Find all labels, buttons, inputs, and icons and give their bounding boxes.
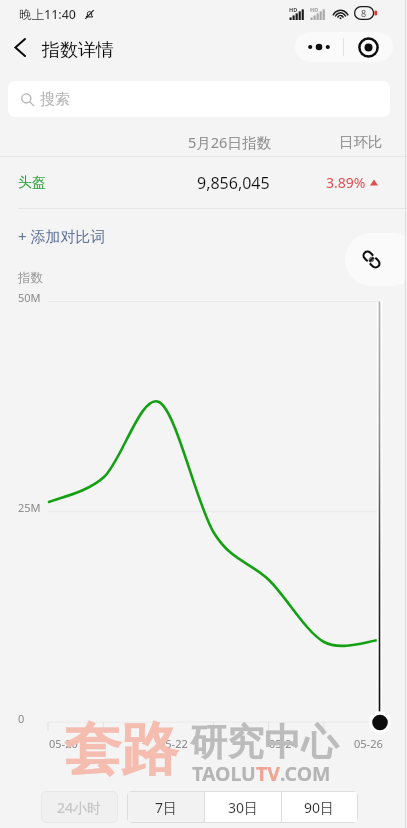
staticText: 研究中心	[190, 719, 338, 766]
staticText: TAOLU	[192, 760, 256, 787]
staticText: 0	[18, 711, 25, 726]
staticText: 套路	[64, 714, 178, 786]
staticText: 3.89%	[326, 173, 366, 192]
staticText: .COM	[280, 760, 331, 787]
button[interactable]: Copy link	[345, 233, 407, 286]
staticText: 晚上11:40	[19, 6, 77, 23]
button[interactable]: 7日	[128, 792, 204, 822]
staticText: 30日	[228, 798, 259, 817]
staticText: 5月26日指数	[188, 132, 271, 152]
staticText: 9,856,045	[197, 172, 270, 194]
staticText: HD	[289, 6, 298, 13]
button[interactable]: 30日	[205, 792, 281, 822]
button[interactable]: 24小时	[42, 792, 117, 822]
staticText: 05-20	[49, 736, 78, 751]
staticText: 05-22	[159, 736, 188, 751]
staticText: 搜索	[40, 90, 70, 109]
staticText: 05-26	[354, 736, 383, 751]
staticText: 25M	[18, 500, 41, 515]
staticText: TV	[256, 760, 280, 787]
staticText: 日环比	[339, 133, 383, 151]
button[interactable]: 搜索	[8, 81, 390, 117]
staticText: 05-24	[269, 736, 298, 751]
button[interactable]: 90日	[282, 792, 357, 822]
staticText: 90日	[304, 798, 335, 817]
button[interactable]: Close	[344, 32, 393, 62]
button[interactable]: + 添加对比词	[18, 226, 106, 246]
staticText: + 添加对比词	[18, 226, 106, 246]
staticText: 头盔	[18, 174, 46, 192]
button[interactable]: More options	[295, 32, 343, 62]
staticText: 指数详情	[42, 39, 114, 62]
staticText: 50M	[18, 290, 41, 305]
button[interactable]: 头盔	[0, 157, 407, 208]
staticText: HD	[310, 6, 319, 13]
staticText: 24小时	[57, 798, 102, 817]
staticText: 指数	[18, 270, 43, 286]
staticText: 7日	[155, 798, 178, 817]
button[interactable]: Back	[5, 25, 35, 69]
staticText: 8	[361, 7, 367, 19]
